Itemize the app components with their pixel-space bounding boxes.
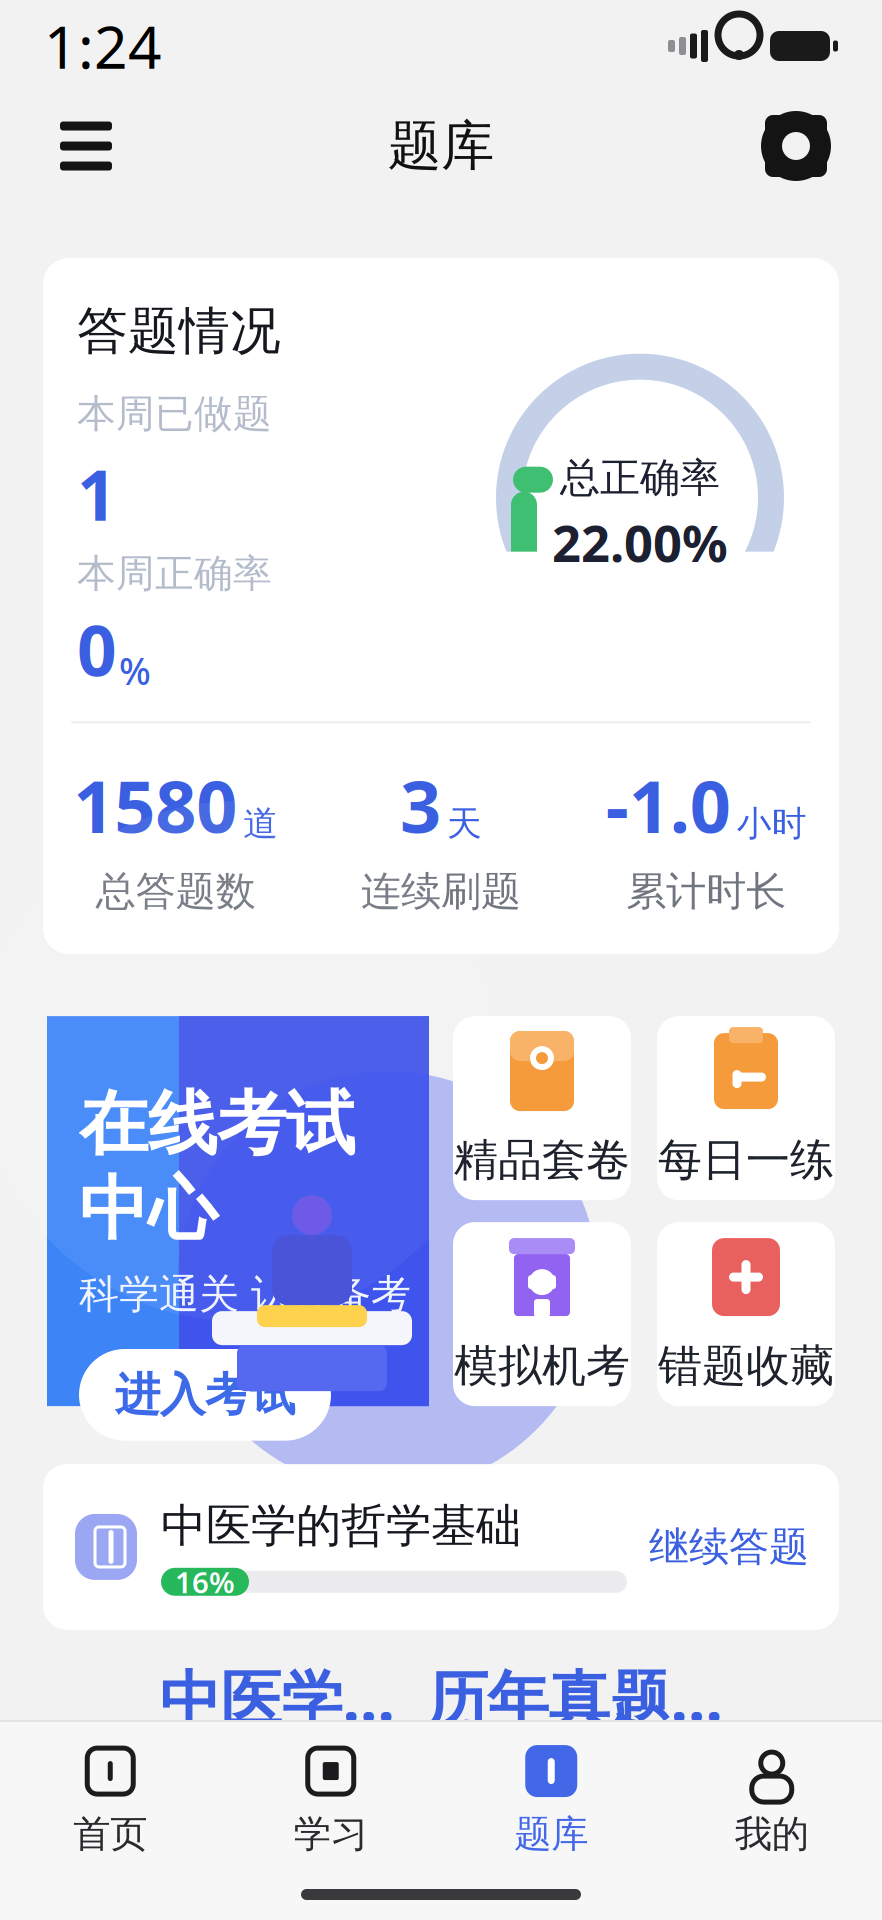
staticText: 题库 xyxy=(514,1811,588,1857)
staticText: 在线考试中心 xyxy=(79,1081,355,1252)
staticText: 本周已做题 xyxy=(77,390,272,438)
staticText: 天 xyxy=(447,802,482,845)
staticText: 1 xyxy=(77,448,117,540)
staticText: 1580 xyxy=(73,757,237,853)
button[interactable]: 我的 xyxy=(661,1740,882,1860)
staticText: 模拟机考 xyxy=(454,1339,630,1393)
staticText: 本周正确率 xyxy=(77,550,272,597)
staticText: 中医学… 历年真题… xyxy=(159,1657,722,1738)
button[interactable]: 中医学的哲学基础 xyxy=(43,1464,839,1630)
button[interactable]: 答题情况 xyxy=(43,258,839,954)
staticText: 错题收藏 xyxy=(658,1339,834,1393)
button[interactable]: 每日一练 xyxy=(657,1016,835,1200)
button[interactable]: Menu xyxy=(44,104,128,188)
button[interactable]: 题库 xyxy=(441,1740,661,1860)
staticText: 累计时长 xyxy=(626,867,786,916)
staticText: 总答题数 xyxy=(96,867,256,916)
staticText: 16% xyxy=(175,1562,235,1601)
staticText: 题库 xyxy=(388,113,494,179)
staticText: 0 xyxy=(77,603,117,695)
staticText: 中医学的哲学基础 xyxy=(161,1498,521,1554)
staticText: -1.0 xyxy=(606,757,731,853)
staticText: 进入考试 xyxy=(115,1367,295,1423)
button[interactable]: 模拟机考 xyxy=(453,1222,631,1406)
staticText: 科学通关 认真备考 xyxy=(79,1270,411,1319)
staticText: % xyxy=(119,646,151,695)
staticText: 22.00% xyxy=(552,509,728,576)
staticText: 精品套卷 xyxy=(454,1133,630,1187)
staticText: 3 xyxy=(400,757,441,853)
staticText: 答题情况 xyxy=(77,300,281,362)
button[interactable]: 错题收藏 xyxy=(657,1222,835,1406)
button[interactable]: 在线考试中心 xyxy=(0,801,598,1621)
button[interactable]: 精品套卷 xyxy=(453,1016,631,1200)
button[interactable]: 首页 xyxy=(0,1740,220,1860)
staticText: 小时 xyxy=(737,802,807,845)
button[interactable]: 学习 xyxy=(220,1740,441,1860)
staticText: 1:24 xyxy=(44,7,162,85)
staticText: 首页 xyxy=(73,1811,147,1857)
button[interactable]: Settings xyxy=(754,104,838,188)
staticText: 道 xyxy=(243,802,278,845)
staticText: 总正确率 xyxy=(560,453,720,503)
staticText: 我的 xyxy=(735,1811,809,1857)
staticText: 连续刷题 xyxy=(361,867,521,916)
staticText: 继续答题 xyxy=(649,1522,809,1571)
staticText: 每日一练 xyxy=(658,1133,834,1187)
staticText: 学习 xyxy=(294,1811,368,1857)
